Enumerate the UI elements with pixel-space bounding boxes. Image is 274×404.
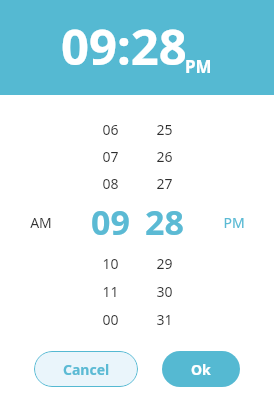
button[interactable]: 26 bbox=[142, 142, 186, 170]
staticText: 28 bbox=[145, 199, 184, 237]
button[interactable]: 06 bbox=[88, 115, 132, 143]
button[interactable]: AM bbox=[21, 208, 61, 236]
button[interactable]: 31 bbox=[142, 305, 186, 333]
staticText: 31 bbox=[156, 310, 173, 329]
button[interactable]: 28 bbox=[134, 199, 194, 237]
button[interactable]: 09:28 bbox=[0, 0, 274, 95]
staticText: 09 bbox=[91, 199, 130, 237]
button[interactable]: 10 bbox=[88, 249, 132, 277]
staticText: PM bbox=[223, 213, 245, 232]
staticText: 11 bbox=[102, 282, 119, 301]
staticText: 30 bbox=[156, 282, 173, 301]
staticText: 00 bbox=[102, 310, 119, 329]
button[interactable]: 07 bbox=[88, 142, 132, 170]
staticText: 27 bbox=[156, 174, 173, 193]
button[interactable]: 00 bbox=[88, 305, 132, 333]
button[interactable]: Cancel bbox=[34, 351, 138, 387]
staticText: 26 bbox=[156, 147, 173, 166]
staticText: 10 bbox=[102, 254, 119, 273]
staticText: Cancel bbox=[63, 360, 110, 379]
button[interactable]: 08 bbox=[88, 169, 132, 197]
button[interactable]: 29 bbox=[142, 249, 186, 277]
button[interactable]: PM bbox=[214, 208, 254, 236]
button[interactable]: 11 bbox=[88, 277, 132, 305]
staticText: 09:28 bbox=[61, 13, 187, 80]
button[interactable]: 30 bbox=[142, 277, 186, 305]
button[interactable]: Ok bbox=[162, 351, 240, 387]
staticText: 07 bbox=[102, 147, 119, 166]
staticText: AM bbox=[30, 213, 52, 232]
button[interactable]: 09 bbox=[80, 199, 140, 237]
staticText: PM bbox=[185, 55, 212, 78]
staticText: 06 bbox=[102, 120, 119, 139]
button[interactable]: 27 bbox=[142, 169, 186, 197]
staticText: 25 bbox=[156, 120, 173, 139]
staticText: Ok bbox=[191, 360, 211, 379]
staticText: 29 bbox=[156, 254, 173, 273]
button[interactable]: 25 bbox=[142, 115, 186, 143]
staticText: 08 bbox=[102, 174, 119, 193]
